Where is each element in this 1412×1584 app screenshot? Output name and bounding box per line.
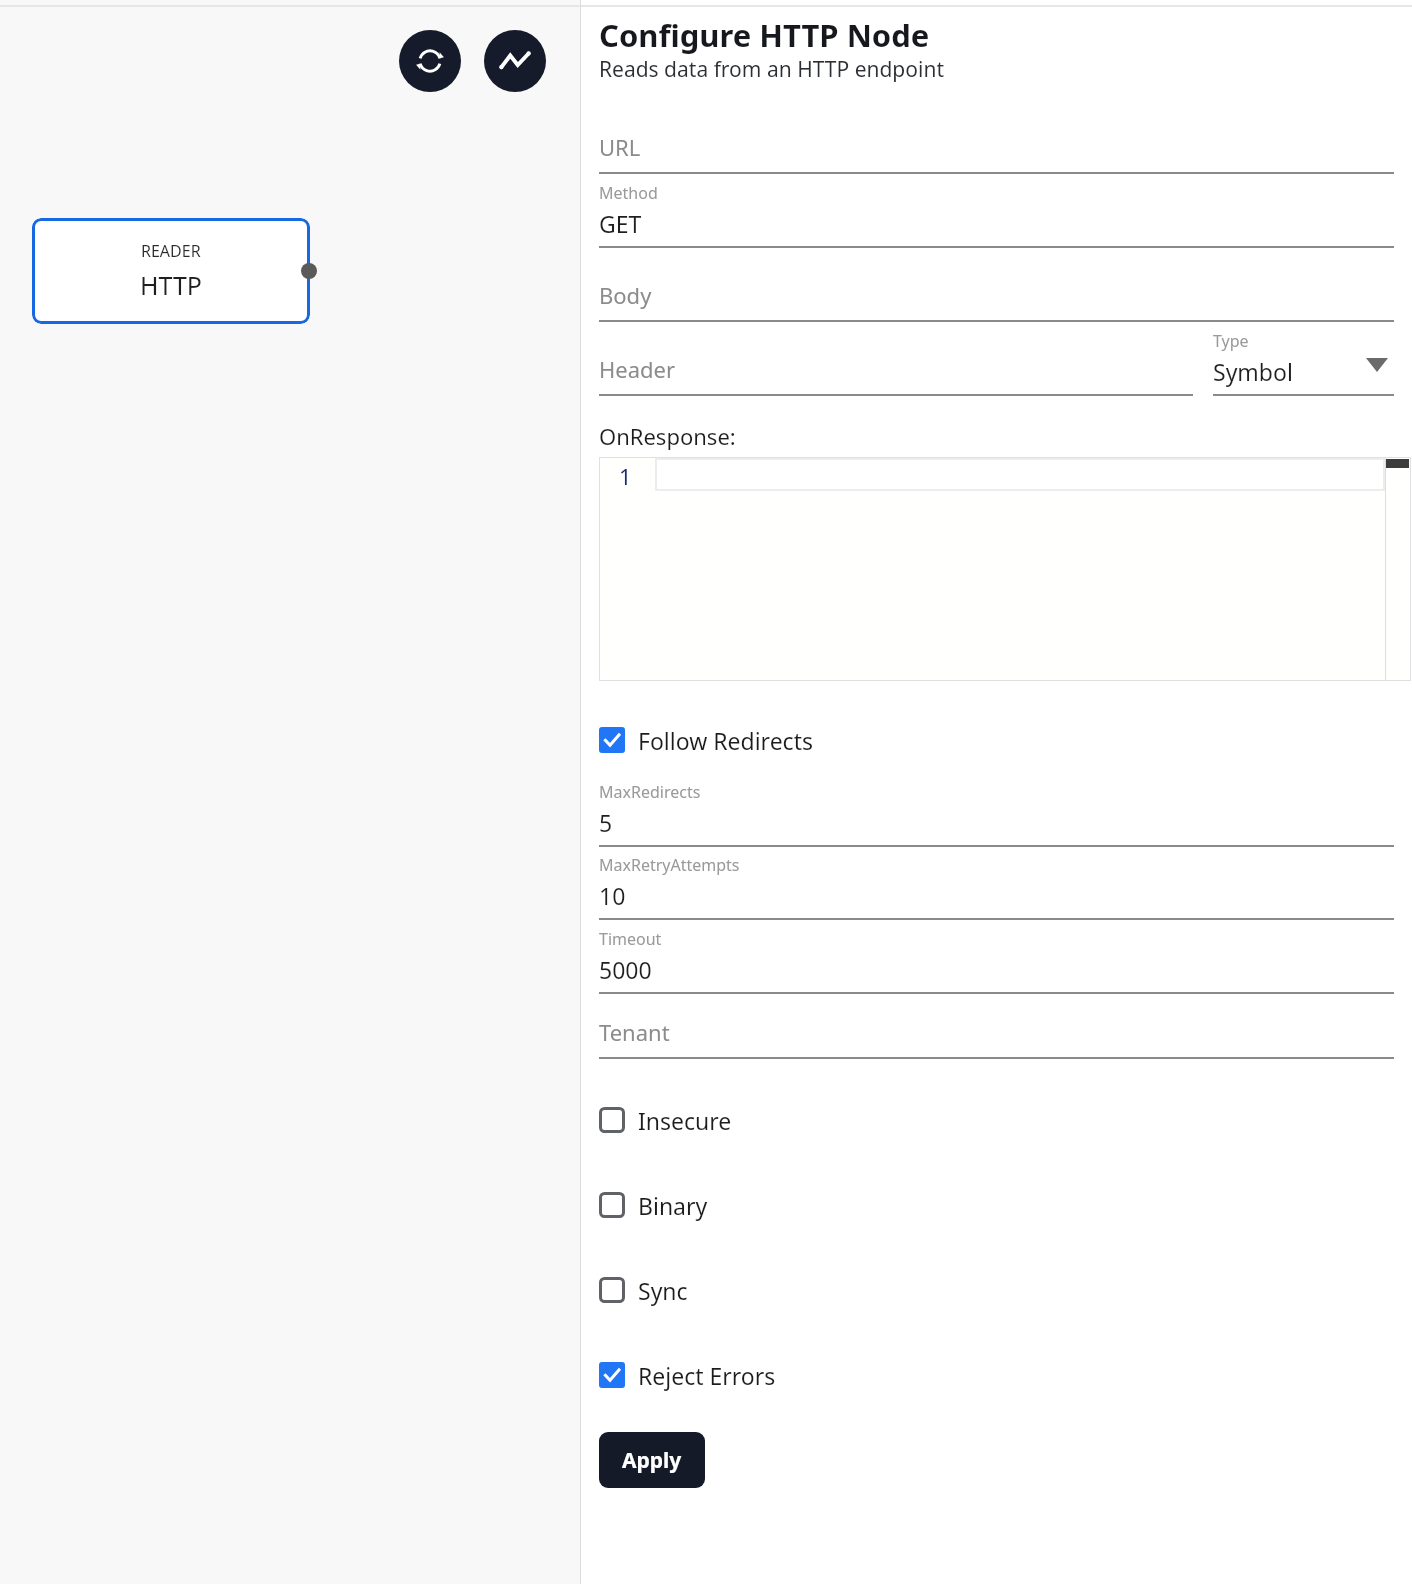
button[interactable]: Activity — [484, 30, 546, 92]
button[interactable]: 1 — [599, 457, 1411, 681]
button[interactable]: MaxRetryAttempts — [599, 854, 1394, 918]
button[interactable]: Follow Redirects — [599, 722, 959, 758]
staticText: OnResponse: — [599, 421, 736, 451]
button[interactable]: Tenant — [599, 1011, 1394, 1057]
button[interactable]: URL — [599, 126, 1394, 172]
staticText: Tenant — [599, 1017, 670, 1047]
button[interactable]: Header — [599, 348, 1193, 394]
staticText: READER — [141, 240, 201, 262]
button[interactable]: Refresh — [399, 30, 461, 92]
staticText: 1 — [619, 461, 632, 491]
button[interactable]: Binary — [599, 1187, 959, 1223]
button[interactable]: MaxRedirects — [599, 781, 1394, 845]
staticText: Header — [599, 354, 676, 384]
staticText: Reject Errors — [638, 1360, 776, 1391]
staticText: Method — [599, 182, 658, 204]
staticText: URL — [599, 132, 641, 162]
button[interactable]: Insecure — [599, 1102, 959, 1138]
button[interactable]: Method — [599, 182, 1394, 246]
button[interactable]: Type dropdown — [1213, 330, 1394, 392]
staticText: Follow Redirects — [638, 725, 813, 756]
staticText: Apply — [622, 1446, 682, 1475]
staticText: Body — [599, 280, 652, 310]
staticText: Reads data from an HTTP endpoint — [599, 55, 944, 84]
staticText: MaxRetryAttempts — [599, 854, 740, 876]
button[interactable]: Reject Errors — [599, 1357, 959, 1393]
button[interactable]: Type — [1213, 330, 1394, 394]
button[interactable]: Apply — [599, 1432, 705, 1488]
button[interactable]: Body — [599, 274, 1394, 320]
staticText: 5 — [599, 807, 613, 838]
staticText: Timeout — [599, 928, 662, 950]
staticText: GET — [599, 208, 642, 239]
staticText: 5000 — [599, 954, 652, 985]
button[interactable]: Sync — [599, 1272, 959, 1308]
staticText: Configure HTTP Node — [599, 14, 930, 56]
staticText: Insecure — [638, 1105, 732, 1136]
staticText: Symbol — [1213, 356, 1293, 387]
staticText: HTTP — [140, 268, 202, 302]
staticText: MaxRedirects — [599, 781, 701, 803]
staticText: Binary — [638, 1190, 708, 1221]
button[interactable]: READER — [32, 218, 310, 324]
staticText: Sync — [638, 1275, 688, 1306]
staticText: Type — [1213, 330, 1249, 352]
button[interactable]: Timeout — [599, 928, 1394, 992]
staticText: 10 — [599, 880, 626, 911]
